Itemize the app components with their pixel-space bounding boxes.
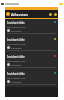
button[interactable]: Search: [49, 13, 52, 16]
button[interactable]: Incident title: [5, 19, 58, 36]
button[interactable]: Notifications: [54, 13, 57, 16]
staticText: Atlassian: [11, 12, 28, 17]
button[interactable]: Incident title: [5, 70, 58, 87]
staticText: Description line: [7, 42, 26, 45]
button[interactable]: Incident title: [5, 36, 58, 53]
staticText: assignee: [11, 80, 22, 83]
staticText: Incident title: [7, 38, 25, 42]
staticText: assignee: [11, 29, 22, 32]
button[interactable]: Incident title: [5, 53, 58, 70]
staticText: Incident title: [7, 72, 25, 76]
staticText: Description line: [7, 59, 26, 62]
staticText: Incident title: [7, 21, 25, 25]
staticText: assignee: [11, 63, 22, 66]
staticText: Description line: [7, 25, 26, 28]
staticText: Description line: [7, 76, 26, 79]
staticText: Incident title: [7, 55, 25, 59]
staticText: assignee: [11, 46, 22, 49]
